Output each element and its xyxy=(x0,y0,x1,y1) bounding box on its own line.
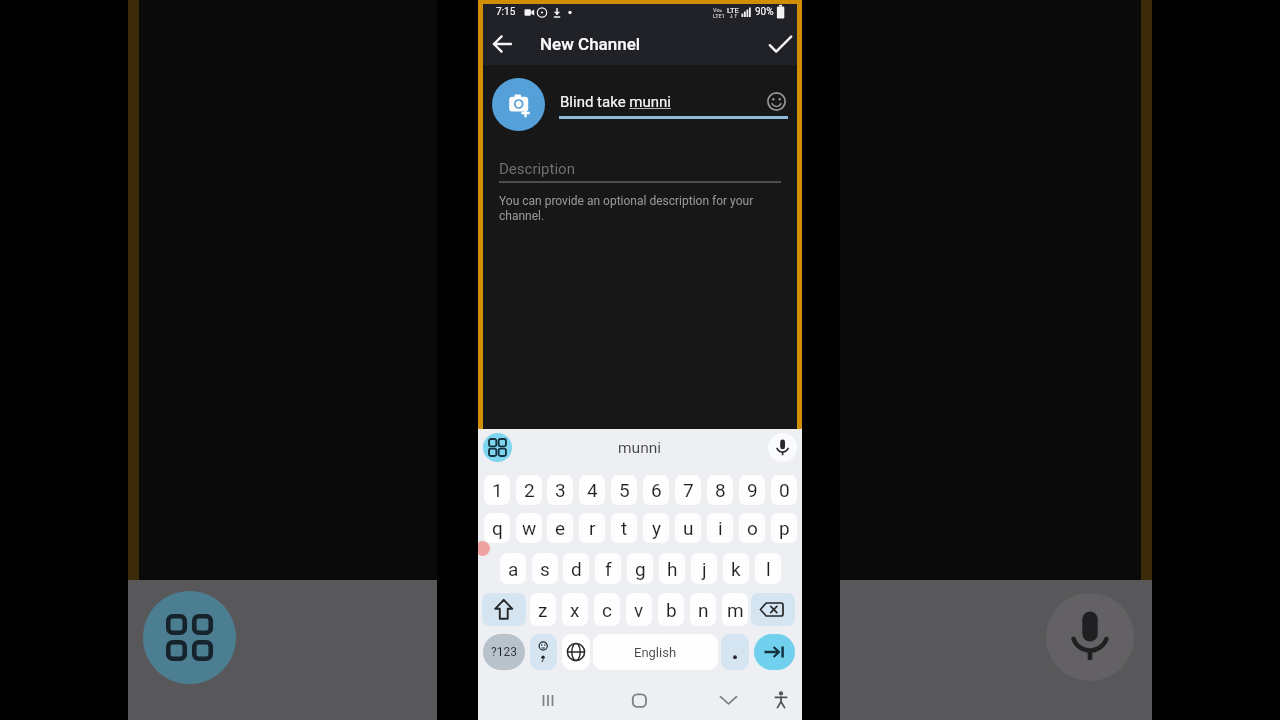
staticText: x xyxy=(570,599,580,621)
button[interactable]: q xyxy=(484,513,510,543)
button[interactable]: o xyxy=(739,513,765,543)
staticText: 2 xyxy=(524,479,535,501)
button[interactable]: j xyxy=(691,553,717,584)
staticText: 4 xyxy=(587,479,598,501)
staticText: s xyxy=(540,558,550,580)
button[interactable]: x xyxy=(562,593,588,626)
button[interactable]: z xyxy=(530,593,556,626)
staticText: t xyxy=(621,517,628,539)
button[interactable]: p xyxy=(771,513,797,543)
button[interactable]: k xyxy=(723,553,749,584)
button[interactable] xyxy=(562,634,590,670)
button[interactable]: 7 xyxy=(675,475,701,505)
staticText: 5 xyxy=(619,479,630,501)
staticText: LTE xyxy=(727,6,739,15)
staticText: 90% xyxy=(755,6,774,18)
button[interactable]: 2 xyxy=(516,475,542,505)
button[interactable] xyxy=(754,634,795,670)
staticText: LTE1 xyxy=(713,13,725,19)
button[interactable]: b xyxy=(658,593,684,626)
button[interactable] xyxy=(488,30,516,58)
staticText: ↓↑ xyxy=(729,13,739,19)
button[interactable] xyxy=(629,690,650,711)
button[interactable] xyxy=(766,91,787,112)
staticText: d xyxy=(571,558,582,580)
staticText: c xyxy=(602,599,612,621)
staticText: Description xyxy=(499,160,575,178)
staticText: e xyxy=(555,517,566,539)
staticText: u xyxy=(683,517,694,539)
button[interactable]: 4 xyxy=(579,475,605,505)
button[interactable]: h xyxy=(659,553,685,584)
button[interactable]: 3 xyxy=(547,475,573,505)
staticText: n xyxy=(698,599,709,621)
button[interactable]: n xyxy=(690,593,716,626)
button[interactable]: 1 xyxy=(484,475,510,505)
button[interactable] xyxy=(483,433,512,462)
staticText: j xyxy=(702,558,707,580)
button[interactable]: 8 xyxy=(707,475,733,505)
button[interactable] xyxy=(530,634,557,670)
button[interactable]: 5 xyxy=(611,475,637,505)
button[interactable]: l xyxy=(755,553,781,584)
button[interactable]: 0 xyxy=(771,475,797,505)
staticText: q xyxy=(492,517,503,539)
staticText: 8 xyxy=(715,479,726,501)
staticText: w xyxy=(522,517,537,539)
staticText: 7 xyxy=(683,479,694,501)
staticText: y xyxy=(652,517,661,539)
staticText: 3 xyxy=(555,479,566,501)
button[interactable]: 9 xyxy=(739,475,765,505)
staticText: 6 xyxy=(651,479,662,501)
button[interactable] xyxy=(558,82,788,120)
staticText: 0 xyxy=(779,479,790,501)
staticText: Vo» xyxy=(713,7,723,13)
button[interactable]: c xyxy=(594,593,620,626)
button[interactable]: i xyxy=(707,513,733,543)
button[interactable] xyxy=(499,155,781,185)
staticText: New Channel xyxy=(540,34,641,54)
button[interactable]: u xyxy=(675,513,701,543)
staticText: g xyxy=(635,558,646,580)
button[interactable]: d xyxy=(563,553,589,584)
button[interactable] xyxy=(751,593,795,626)
button[interactable]: g xyxy=(627,553,653,584)
button[interactable] xyxy=(482,593,526,626)
button[interactable]: v xyxy=(626,593,652,626)
staticText: f xyxy=(605,558,612,580)
button[interactable]: a xyxy=(500,553,526,584)
staticText: l xyxy=(766,558,771,580)
button[interactable]: r xyxy=(579,513,605,543)
staticText: o xyxy=(747,517,758,539)
button[interactable] xyxy=(766,30,794,58)
staticText: h xyxy=(667,558,678,580)
button[interactable]: t xyxy=(611,513,637,543)
button[interactable] xyxy=(718,690,739,711)
staticText: r xyxy=(589,517,596,539)
button[interactable]: m xyxy=(722,593,748,626)
button[interactable] xyxy=(721,634,749,670)
staticText: p xyxy=(779,517,790,539)
button[interactable]: 6 xyxy=(643,475,669,505)
button[interactable]: ?123 xyxy=(483,634,525,670)
staticText: v xyxy=(634,599,644,621)
button[interactable]: English xyxy=(593,634,718,670)
button[interactable]: y xyxy=(643,513,669,543)
staticText: 7:15 xyxy=(496,6,516,18)
staticText: 9 xyxy=(747,479,758,501)
staticText: m xyxy=(727,599,744,621)
button[interactable]: s xyxy=(532,553,558,584)
button[interactable]: munni xyxy=(478,433,802,462)
button[interactable] xyxy=(536,690,560,711)
button[interactable] xyxy=(492,78,545,131)
button[interactable] xyxy=(768,433,797,462)
button[interactable]: w xyxy=(516,513,542,543)
button[interactable]: e xyxy=(547,513,573,543)
button[interactable] xyxy=(771,688,792,711)
staticText: ?123 xyxy=(491,645,517,659)
button[interactable]: f xyxy=(595,553,621,584)
staticText: b xyxy=(666,599,677,621)
staticText: 1 xyxy=(492,479,503,501)
staticText: You can provide an optional description … xyxy=(499,194,754,223)
staticText: munni xyxy=(618,439,662,457)
